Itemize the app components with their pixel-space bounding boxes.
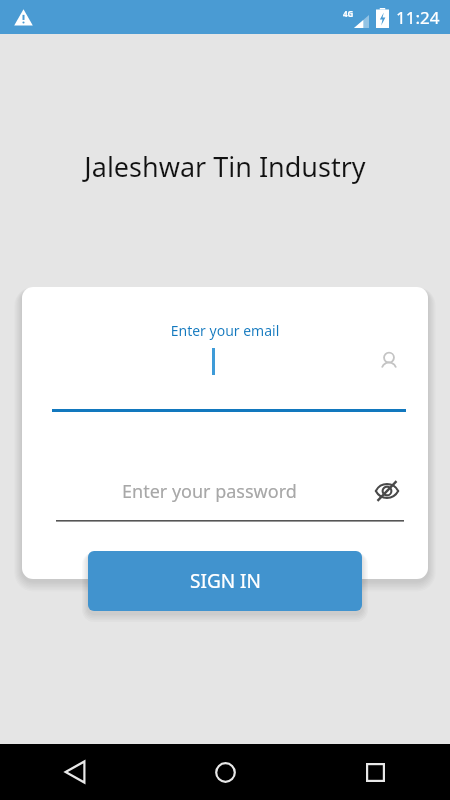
button[interactable]: SIGN IN bbox=[88, 551, 362, 611]
button[interactable]: Account bbox=[52, 343, 406, 379]
button[interactable]: Back bbox=[0, 744, 150, 800]
staticText: 4G bbox=[343, 8, 354, 19]
other: Show password bbox=[373, 480, 401, 502]
button[interactable]: Enter your password bbox=[56, 471, 404, 511]
other: Account bbox=[378, 351, 400, 373]
staticText: Enter your email bbox=[22, 321, 428, 340]
button[interactable]: Recent apps bbox=[300, 744, 450, 800]
staticText: 11:24 bbox=[396, 6, 440, 29]
button[interactable]: Home bbox=[150, 744, 300, 800]
staticText: SIGN IN bbox=[190, 568, 261, 594]
staticText: Enter your password bbox=[122, 479, 297, 504]
staticText: Jaleshwar Tin Industry bbox=[0, 148, 450, 185]
